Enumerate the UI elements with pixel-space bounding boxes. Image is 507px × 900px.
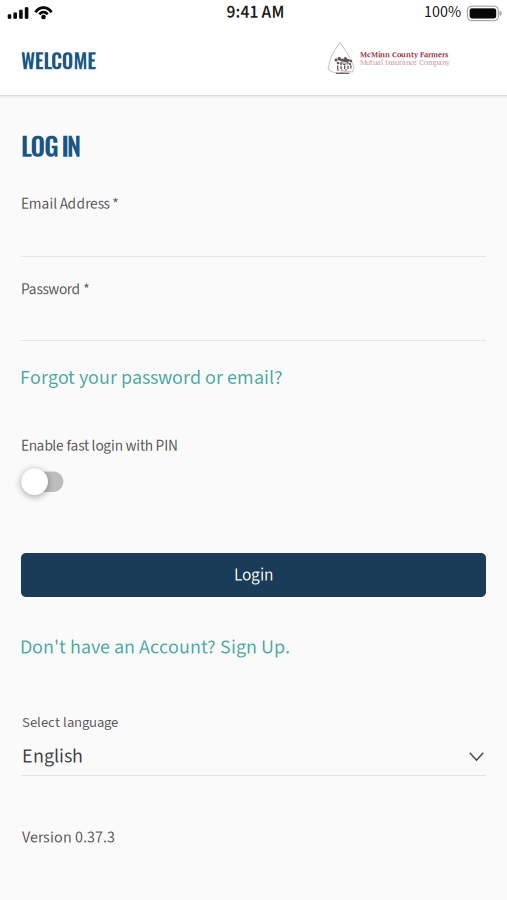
button[interactable]: Forgot your password or email? (20, 363, 283, 392)
staticText: Enable fast login with PIN (21, 435, 178, 457)
staticText: Mutual Insurance Company (360, 57, 450, 67)
staticText: LOG IN (21, 126, 81, 164)
button[interactable]: Don't have an Account? Sign Up. (20, 633, 290, 661)
staticText: English (22, 742, 83, 770)
staticText: WELCOME (21, 45, 96, 75)
staticText: Login (234, 563, 273, 587)
staticText: Version 0.37.3 (22, 826, 115, 849)
button[interactable]: Login (21, 553, 486, 597)
staticText: 9:41 AM (226, 0, 284, 25)
button[interactable] (21, 467, 81, 497)
staticText: McMinn County Farmers (360, 49, 448, 59)
button[interactable]: English (21, 742, 486, 776)
staticText: Don't have an Account? Sign Up. (20, 633, 290, 661)
staticText: 100% (424, 0, 461, 23)
staticText: Password * (21, 278, 89, 300)
staticText: Select language (22, 712, 118, 733)
staticText: Forgot your password or email? (20, 363, 283, 392)
staticText: Email Address * (21, 193, 118, 215)
